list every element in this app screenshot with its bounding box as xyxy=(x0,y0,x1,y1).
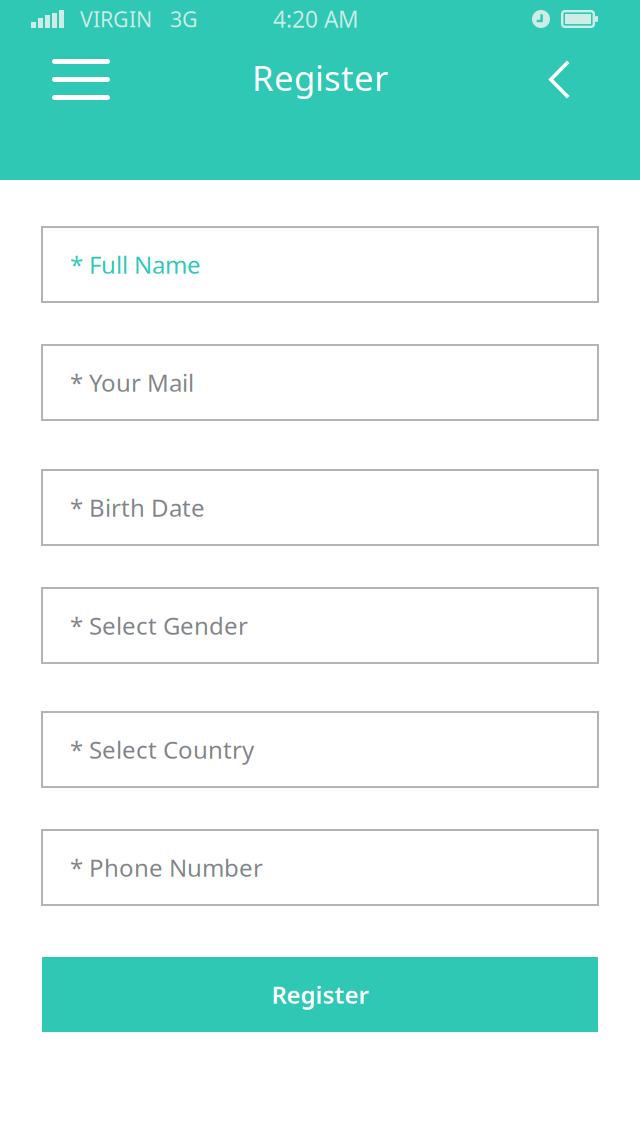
staticText: 4:20 AM xyxy=(273,4,359,34)
staticText: * Select Country xyxy=(70,734,254,765)
button[interactable]: * Phone Number xyxy=(42,830,598,905)
staticText: Register xyxy=(252,54,388,100)
staticText: * Birth Date xyxy=(70,492,205,523)
button[interactable]: * Your Mail xyxy=(42,345,598,420)
button[interactable]: Register xyxy=(42,957,598,1032)
staticText: * Full Name xyxy=(70,249,201,280)
staticText: 3G xyxy=(170,5,198,33)
button[interactable]: Menu xyxy=(40,47,122,112)
staticText: * Select Gender xyxy=(70,610,248,641)
staticText: VIRGIN xyxy=(80,5,152,33)
staticText: * Your Mail xyxy=(70,367,194,398)
button[interactable]: * Select Gender xyxy=(42,588,598,663)
button[interactable]: Back xyxy=(533,48,586,111)
button[interactable]: * Select Country xyxy=(42,712,598,787)
staticText: * Phone Number xyxy=(70,852,263,883)
button[interactable]: * Birth Date xyxy=(42,470,598,545)
staticText: Register xyxy=(271,979,368,1010)
button[interactable]: * Full Name xyxy=(42,227,598,302)
